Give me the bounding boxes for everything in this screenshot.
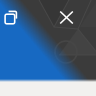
button[interactable]: Duplicate <box>2 4 26 29</box>
button[interactable]: Close <box>53 5 94 28</box>
